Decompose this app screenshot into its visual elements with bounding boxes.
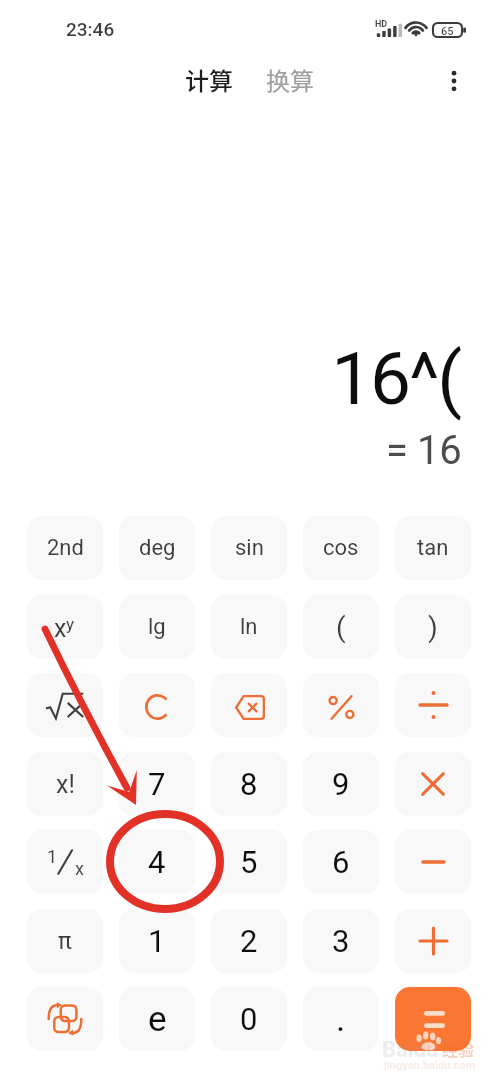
- staticText: 换算: [266, 62, 314, 97]
- staticText: tan: [417, 535, 449, 561]
- button[interactable]: deg: [119, 516, 195, 580]
- staticText: 65: [441, 25, 454, 38]
- staticText: 23:46: [66, 18, 115, 40]
- staticText: sin: [235, 535, 264, 561]
- button[interactable]: (: [303, 595, 379, 659]
- staticText: .: [336, 999, 346, 1040]
- staticText: 经验: [442, 1037, 475, 1060]
- staticText: x: [75, 858, 84, 879]
- button[interactable]: Square root: [27, 673, 103, 737]
- staticText: 5: [240, 844, 258, 880]
- staticText: 16^(: [331, 336, 460, 422]
- staticText: cos: [323, 535, 359, 561]
- button[interactable]: cos: [303, 516, 379, 580]
- button[interactable]: 5: [211, 830, 287, 894]
- staticText: 计算: [185, 62, 233, 97]
- button[interactable]: 1: [119, 909, 195, 973]
- button[interactable]: 4: [119, 830, 195, 894]
- staticText: lg: [148, 614, 166, 640]
- button[interactable]: Reciprocal: [27, 830, 103, 894]
- staticText: 1: [47, 846, 58, 867]
- button[interactable]: lg: [119, 595, 195, 659]
- button[interactable]: 7: [119, 752, 195, 816]
- staticText: 2: [240, 923, 258, 959]
- staticText: 3: [332, 923, 350, 959]
- staticText: (: [336, 611, 346, 644]
- staticText: ln: [240, 614, 258, 640]
- staticText: y: [66, 614, 75, 634]
- button[interactable]: tan: [395, 516, 471, 580]
- button[interactable]: Minus: [395, 830, 471, 894]
- button[interactable]: Equals: [395, 987, 471, 1051]
- staticText: Baidu: [382, 1037, 439, 1063]
- staticText: 6: [332, 844, 350, 880]
- staticText: 9: [332, 766, 350, 802]
- staticText: e: [148, 999, 167, 1040]
- button[interactable]: Multiply: [395, 752, 471, 816]
- button[interactable]: Plus: [395, 909, 471, 973]
- button[interactable]: x!: [27, 752, 103, 816]
- staticText: 0: [240, 1001, 258, 1037]
- staticText: x!: [56, 770, 75, 799]
- button[interactable]: ln: [211, 595, 287, 659]
- button[interactable]: sin: [211, 516, 287, 580]
- staticText: 4: [148, 844, 166, 880]
- button[interactable]: Divide: [395, 673, 471, 737]
- button[interactable]: 2nd: [27, 516, 103, 580]
- button[interactable]: 6: [303, 830, 379, 894]
- button[interactable]: 3: [303, 909, 379, 973]
- button[interactable]: 计算: [177, 57, 241, 102]
- staticText: π: [58, 928, 72, 955]
- staticText: ): [428, 611, 438, 644]
- staticText: = 16: [386, 427, 462, 474]
- button[interactable]: 8: [211, 752, 287, 816]
- button[interactable]: 2: [211, 909, 287, 973]
- staticText: HD: [375, 19, 387, 30]
- staticText: 1: [148, 923, 166, 959]
- staticText: deg: [139, 535, 176, 561]
- button[interactable]: More options: [434, 61, 474, 101]
- staticText: 8: [240, 766, 258, 802]
- button[interactable]: Convert: [27, 987, 103, 1051]
- button[interactable]: Delete: [211, 673, 287, 737]
- staticText: 2nd: [47, 535, 84, 561]
- button[interactable]: Pi: [27, 909, 103, 973]
- button[interactable]: ): [395, 595, 471, 659]
- button[interactable]: x to the power of y: [27, 595, 103, 659]
- staticText: x: [54, 614, 67, 643]
- button[interactable]: e: [119, 987, 195, 1051]
- button[interactable]: 9: [303, 752, 379, 816]
- staticText: 7: [148, 766, 166, 802]
- button[interactable]: %: [303, 673, 379, 737]
- button[interactable]: C: [119, 673, 195, 737]
- button[interactable]: 换算: [258, 57, 322, 102]
- button[interactable]: 0: [211, 987, 287, 1051]
- button[interactable]: .: [303, 987, 379, 1051]
- staticText: jingyan.baidu.com: [384, 1059, 475, 1072]
